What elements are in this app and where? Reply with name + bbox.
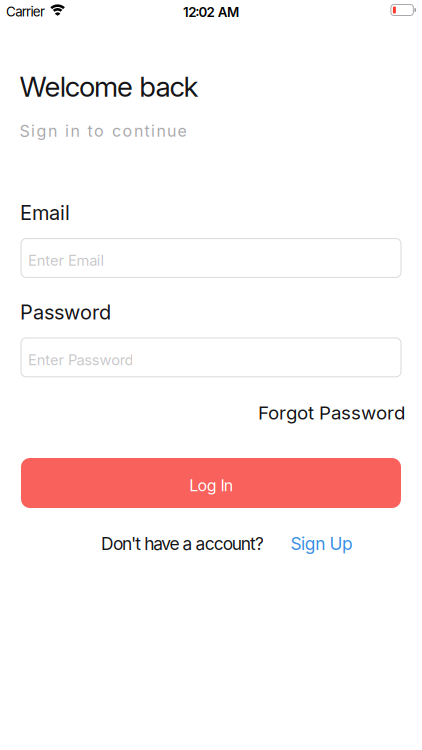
staticText: Log In: [189, 476, 233, 495]
staticText: Welcome back: [19, 70, 199, 103]
staticText: Email: [20, 201, 70, 225]
staticText: Forgot Password: [258, 402, 405, 424]
staticText: Don't have a account?: [101, 533, 264, 554]
staticText: Carrier: [6, 4, 45, 19]
button[interactable]: Sign Up: [290, 533, 353, 554]
button[interactable]: Log In: [21, 458, 401, 508]
staticText: Enter Email: [28, 252, 104, 269]
staticText: Password: [20, 300, 111, 324]
staticText: Sign Up: [290, 533, 353, 554]
button[interactable]: Forgot Password: [258, 402, 405, 424]
staticText: Sign in to continue: [19, 121, 186, 140]
staticText: 12:02 AM: [183, 4, 239, 20]
staticText: Enter Password: [28, 351, 133, 368]
